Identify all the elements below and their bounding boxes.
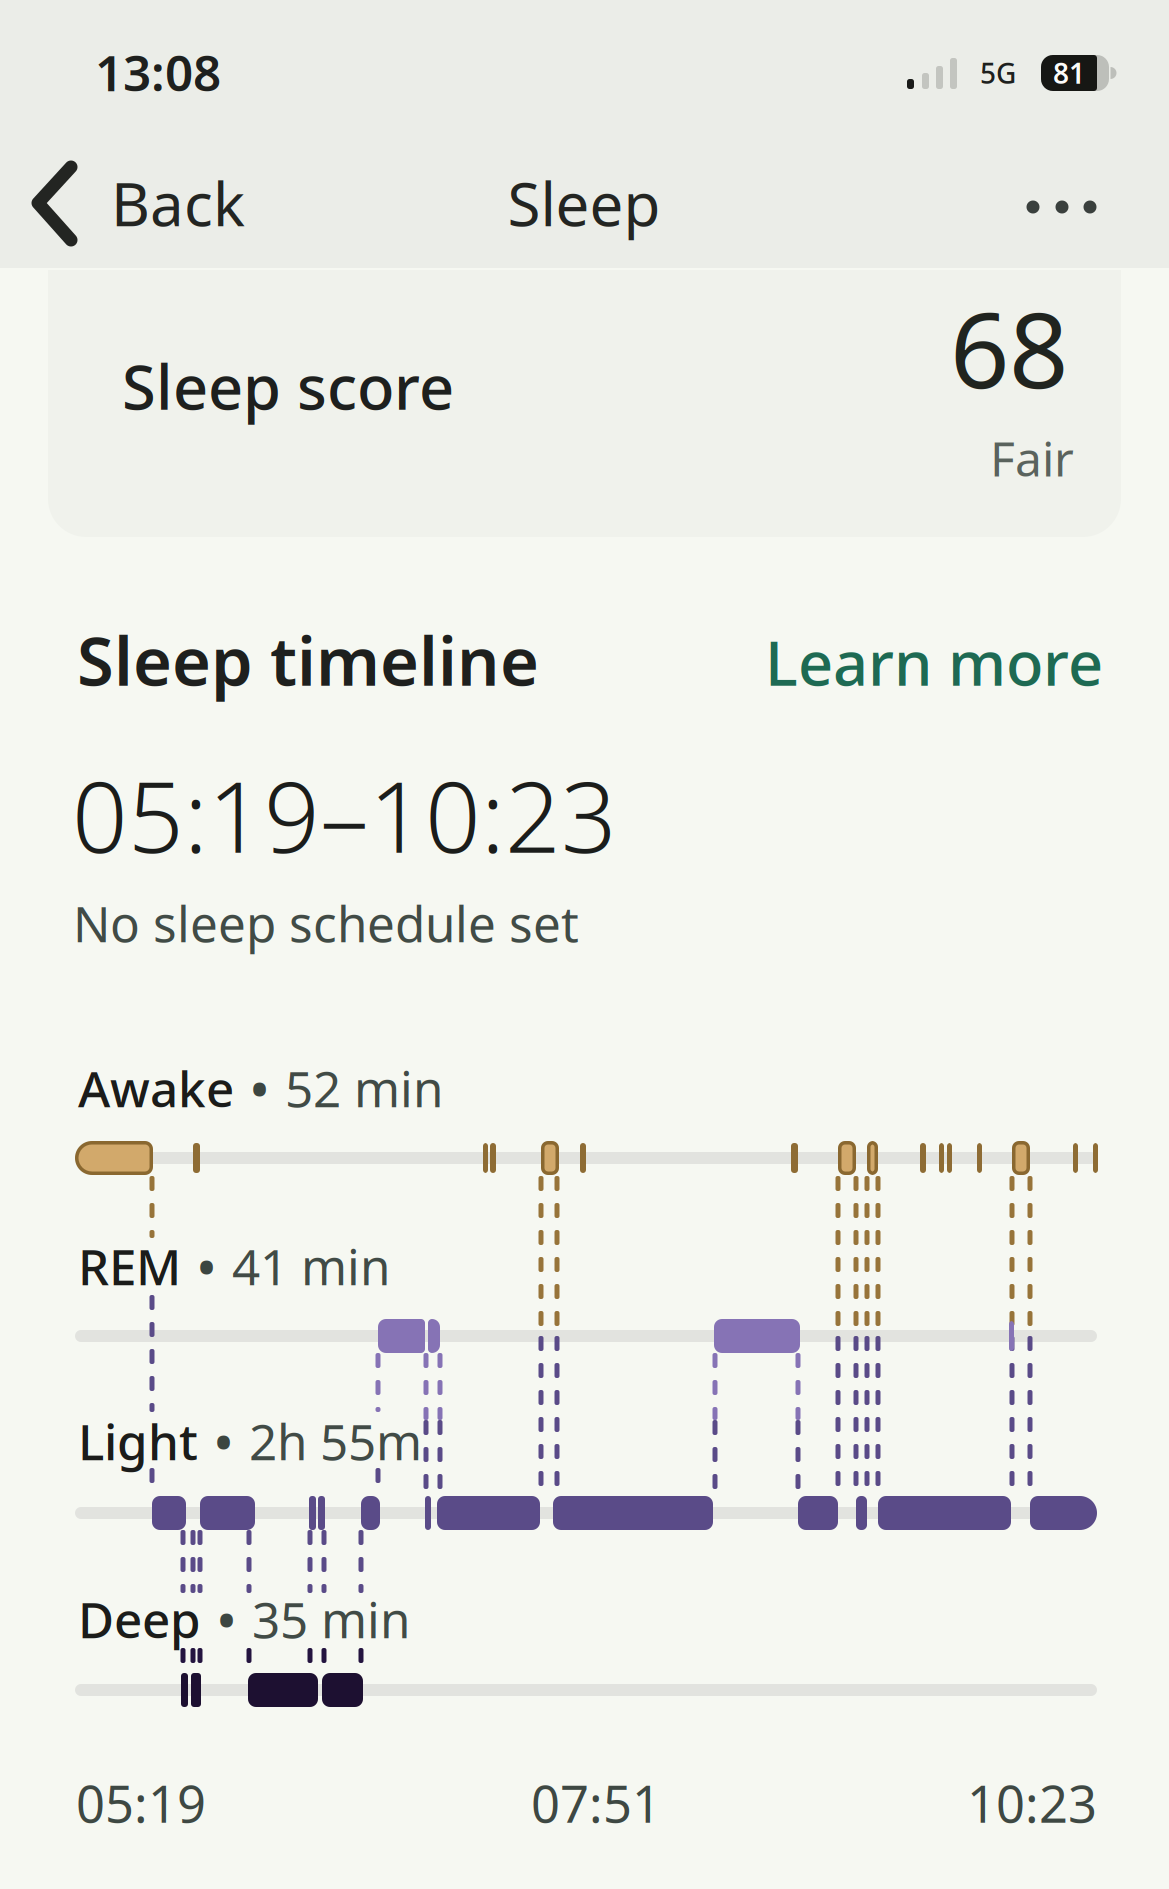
- staticText: 05:19–10:23: [72, 750, 617, 880]
- staticText: 81: [1053, 54, 1085, 92]
- staticText: 2h 55m: [249, 1408, 422, 1474]
- staticText: Deep: [78, 1586, 201, 1652]
- staticText: •: [218, 1589, 235, 1649]
- staticText: •: [251, 1058, 268, 1118]
- staticText: •: [215, 1411, 232, 1471]
- staticText: Fair: [990, 426, 1074, 490]
- button[interactable]: Back: [30, 153, 245, 253]
- staticText: 13:08: [95, 39, 221, 105]
- staticText: 5G: [980, 54, 1016, 92]
- button[interactable]: Sleep score: [48, 270, 1121, 537]
- button[interactable]: Learn more: [643, 622, 1103, 702]
- staticText: 10:23: [967, 1769, 1097, 1837]
- staticText: Sleep timeline: [77, 616, 539, 704]
- staticText: 41 min: [232, 1233, 390, 1299]
- staticText: 52 min: [285, 1055, 443, 1121]
- staticText: Learn more: [765, 621, 1103, 703]
- staticText: 68: [950, 279, 1068, 417]
- staticText: Light: [78, 1408, 198, 1474]
- button[interactable]: More options: [1002, 162, 1122, 252]
- staticText: 07:51: [531, 1769, 661, 1837]
- staticText: •: [198, 1236, 215, 1296]
- staticText: No sleep schedule set: [73, 890, 579, 956]
- staticText: REM: [78, 1233, 181, 1299]
- staticText: 05:19: [76, 1769, 206, 1837]
- staticText: Sleep: [507, 163, 660, 243]
- staticText: Back: [111, 163, 245, 243]
- staticText: Sleep score: [122, 345, 454, 427]
- staticText: Awake: [78, 1055, 234, 1121]
- staticText: 35 min: [252, 1586, 410, 1652]
